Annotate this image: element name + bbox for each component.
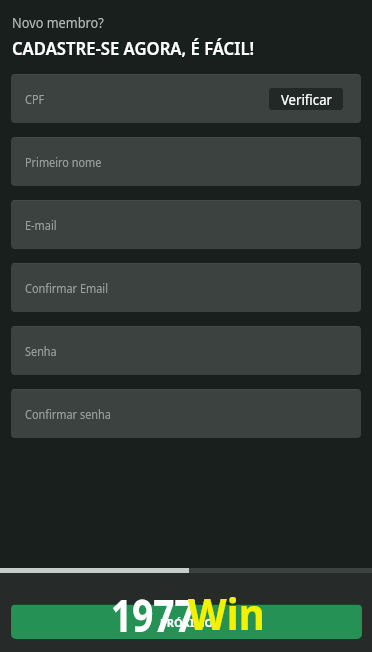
button[interactable]: PRÓXIMO — [11, 605, 362, 639]
button[interactable]: E-mail — [11, 200, 361, 249]
button[interactable]: Primeiro nome — [11, 137, 361, 186]
staticText: Primeiro nome — [25, 154, 102, 171]
button[interactable]: Confirmar Email — [11, 263, 361, 312]
staticText: Novo membro? — [12, 12, 104, 32]
staticText: Senha — [25, 343, 58, 360]
staticText: 1977 — [111, 585, 196, 645]
staticText: E-mail — [25, 217, 57, 234]
staticText: CPF — [25, 91, 44, 108]
staticText: Win — [188, 584, 265, 643]
staticText: Verificar — [281, 90, 332, 109]
staticText: PRÓXIMO — [160, 615, 214, 630]
button[interactable]: CPF — [11, 74, 361, 123]
staticText: CADASTRE-SE AGORA, É FÁCIL! — [12, 35, 254, 60]
button[interactable]: Senha — [11, 326, 361, 375]
staticText: Confirmar Email — [25, 280, 109, 297]
staticText: Confirmar senha — [25, 406, 111, 423]
button[interactable]: Confirmar senha — [11, 389, 361, 438]
button[interactable]: Verificar — [269, 88, 343, 110]
